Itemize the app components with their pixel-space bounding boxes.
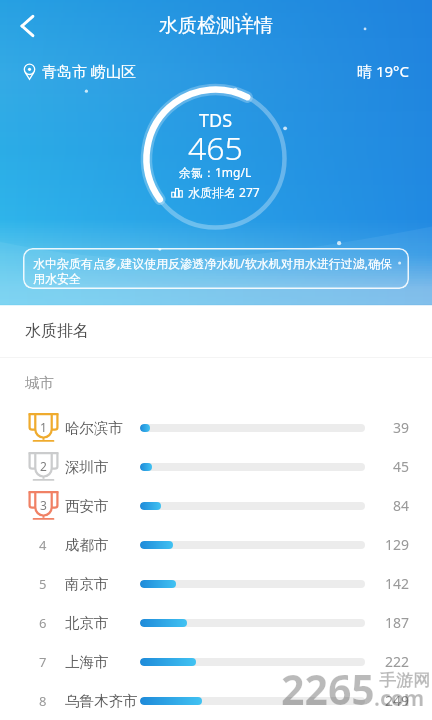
- staticText: 水中杂质有点多,建议使用反渗透净水机/软水机对用水进行过滤,确保用水安全: [33, 255, 401, 287]
- staticText: 7: [39, 653, 47, 671]
- button[interactable]: 4: [0, 525, 432, 564]
- staticText: 6: [39, 614, 47, 632]
- staticText: 5: [39, 575, 47, 593]
- staticText: 8: [39, 692, 47, 710]
- staticText: 39: [392, 418, 409, 437]
- staticText: .com: [374, 684, 425, 713]
- button[interactable]: 水中杂质有点多,建议使用反渗透净水机/软水机对用水进行过滤,确保用水安全: [23, 248, 409, 289]
- staticText: 3: [40, 497, 47, 513]
- staticText: 142: [384, 574, 409, 593]
- button[interactable]: 7: [0, 642, 432, 681]
- staticText: 222: [384, 652, 409, 671]
- staticText: 乌鲁木齐市: [65, 692, 138, 710]
- staticText: 4: [39, 536, 47, 554]
- staticText: 深圳市: [65, 458, 109, 476]
- staticText: 水质检测详情: [159, 14, 273, 38]
- staticText: 城市: [25, 374, 54, 392]
- staticText: 手游网: [379, 670, 430, 691]
- staticText: 84: [392, 496, 409, 515]
- staticText: 西安市: [65, 497, 109, 515]
- staticText: 2: [40, 458, 47, 474]
- staticText: 187: [384, 613, 409, 632]
- staticText: 水质排名: [25, 321, 89, 341]
- button[interactable]: 2: [0, 447, 432, 486]
- staticText: 465: [188, 126, 243, 170]
- staticText: 2265: [281, 661, 375, 717]
- staticText: 129: [384, 535, 409, 554]
- button[interactable]: 8: [0, 681, 432, 720]
- staticText: 余氯：1mg/L: [179, 164, 252, 180]
- staticText: 南京市: [65, 575, 109, 593]
- button[interactable]: 6: [0, 603, 432, 642]
- button[interactable]: 5: [0, 564, 432, 603]
- staticText: 45: [392, 457, 409, 476]
- staticText: TDS: [199, 108, 233, 133]
- button[interactable]: Back: [0, 0, 54, 52]
- staticText: 哈尔滨市: [65, 419, 123, 437]
- staticText: 水质排名 277: [188, 184, 260, 200]
- button[interactable]: 1: [0, 408, 432, 447]
- button[interactable]: 水质排名: [0, 304, 432, 357]
- staticText: 北京市: [65, 614, 109, 632]
- staticText: 晴 19°C: [357, 61, 409, 81]
- staticText: 成都市: [65, 536, 109, 554]
- staticText: 1: [40, 419, 47, 435]
- staticText: 249: [384, 691, 409, 710]
- staticText: 青岛市 崂山区: [42, 61, 136, 81]
- button[interactable]: 3: [0, 486, 432, 525]
- staticText: 上海市: [65, 653, 109, 671]
